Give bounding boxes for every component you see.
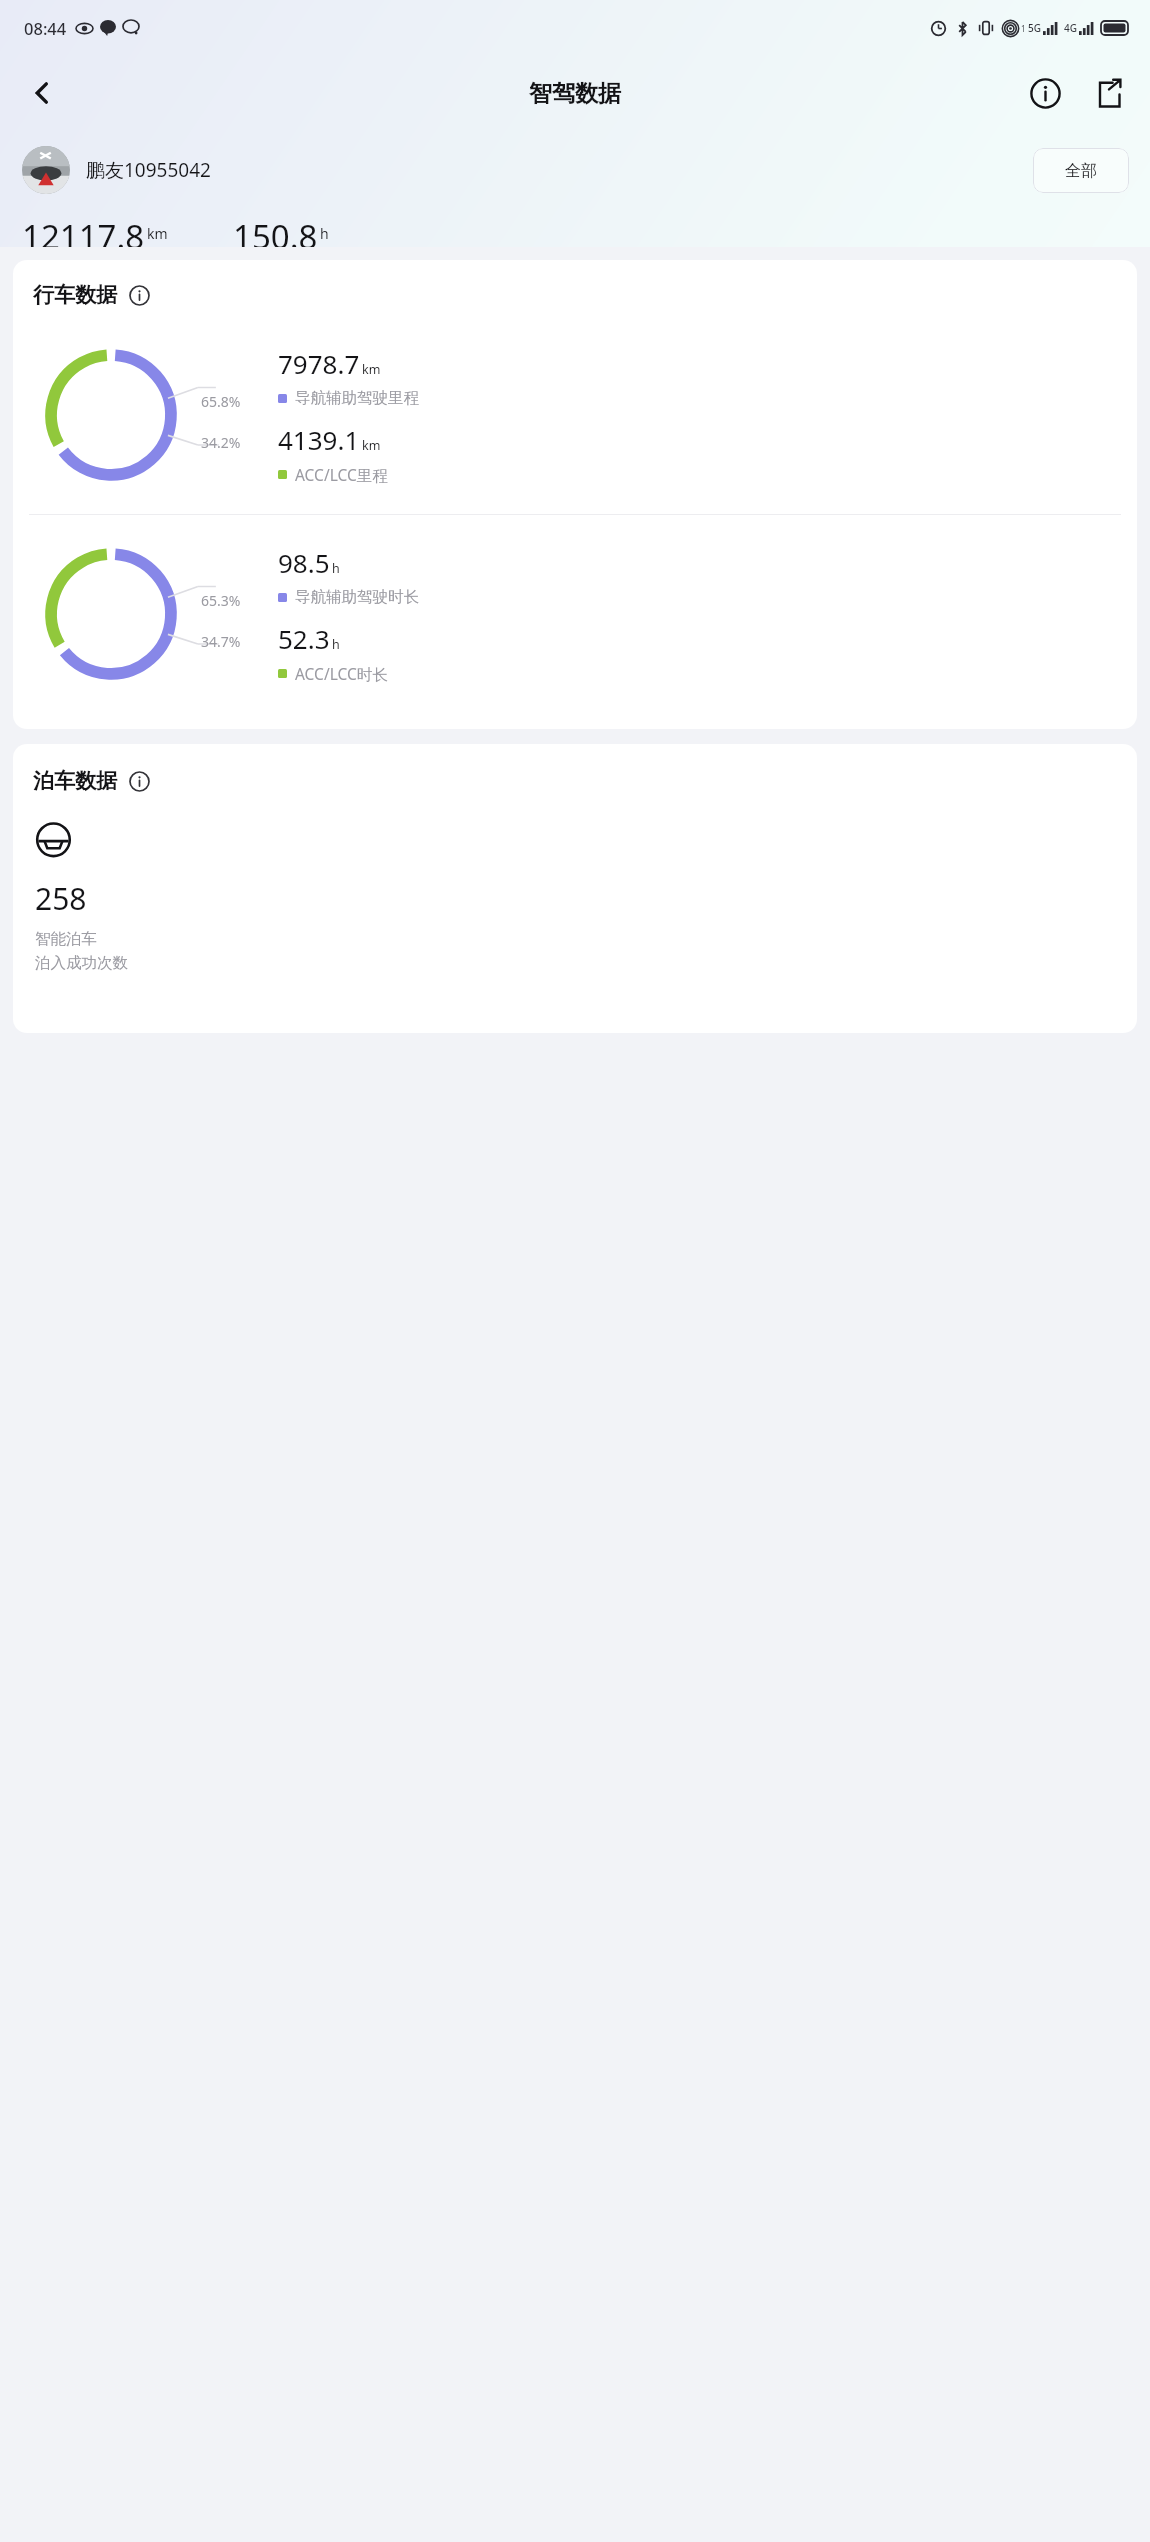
button[interactable]: More info: [126, 282, 152, 308]
staticText: 150.8: [233, 214, 318, 247]
staticText: 泊车数据: [33, 768, 117, 794]
staticText: 65.8%: [201, 392, 241, 411]
staticText: km: [362, 361, 381, 378]
staticText: ACC/LCC时长: [295, 663, 388, 684]
staticText: 12117.8: [22, 214, 145, 247]
button[interactable]: Back: [14, 65, 70, 121]
staticText: h: [332, 636, 340, 653]
staticText: km: [147, 224, 168, 243]
staticText: 智驾数据: [529, 79, 621, 108]
staticText: 导航辅助驾驶里程: [295, 388, 419, 408]
staticText: 52.3: [278, 621, 330, 656]
button[interactable]: Info: [1018, 66, 1072, 120]
staticText: 65.3%: [201, 591, 241, 610]
staticText: 4G: [1064, 21, 1077, 35]
staticText: 1: [1021, 23, 1026, 34]
staticText: 08:44: [24, 17, 67, 39]
staticText: 7978.7: [278, 346, 360, 381]
staticText: ACC/LCC里程: [295, 464, 388, 485]
staticText: 智能泊车: [35, 929, 97, 949]
staticText: 98.5: [278, 545, 330, 580]
staticText: 258: [35, 878, 87, 919]
staticText: h: [320, 224, 329, 243]
staticText: 泊入成功次数: [35, 953, 128, 973]
staticText: 全部: [1065, 161, 1097, 181]
staticText: km: [362, 437, 381, 454]
staticText: 行车数据: [33, 282, 117, 308]
staticText: 34.7%: [201, 632, 241, 651]
staticText: 4139.1: [278, 422, 360, 457]
button[interactable]: More info: [126, 768, 152, 794]
button[interactable]: Share: [1082, 66, 1136, 120]
staticText: 5G: [1028, 21, 1041, 35]
staticText: 导航辅助驾驶时长: [295, 587, 419, 607]
staticText: 鹏友10955042: [86, 157, 211, 183]
staticText: h: [332, 560, 340, 577]
button[interactable]: 全部: [1033, 148, 1129, 193]
staticText: 34.2%: [201, 433, 241, 452]
